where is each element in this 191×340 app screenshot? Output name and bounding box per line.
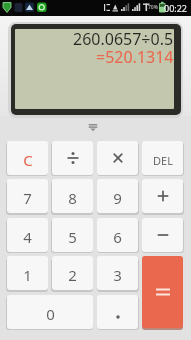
staticText: 1 [23,265,32,285]
staticText: 2 [68,265,77,285]
button[interactable]: 0 [7,295,93,329]
staticText: 8 [68,188,77,208]
staticText: 7 [23,188,32,208]
button[interactable]: 5 [52,218,93,252]
button[interactable]: 4 [7,218,48,252]
button[interactable] [97,141,138,175]
staticText: 260.0657÷0.5 [73,29,174,50]
button[interactable]: DEL [142,141,183,175]
button[interactable] [142,179,183,213]
button[interactable]: Equals [142,256,183,328]
staticText: 00:22 [164,2,188,14]
staticText: 9 [113,188,122,208]
button[interactable]: 9 [97,179,138,213]
staticText: 70% [148,4,158,11]
button[interactable]: Show history [77,117,114,137]
staticText: DEL [153,153,173,168]
staticText: C [23,150,33,170]
button[interactable]: 1 [7,256,48,290]
staticText: 0 [46,304,55,324]
button[interactable]: 8 [52,179,93,213]
button[interactable]: 6 [97,218,138,252]
button[interactable]: 2 [52,256,93,290]
button[interactable] [97,295,138,329]
button[interactable]: C [7,141,48,175]
staticText: 6 [113,227,122,247]
button[interactable]: 3 [97,256,138,290]
staticText: 3 [113,265,122,285]
button[interactable]: 7 [7,179,48,213]
staticText: =520.1314 [96,46,174,68]
button[interactable] [142,218,183,252]
staticText: 4 [23,227,32,247]
staticText: 5 [68,227,77,247]
button[interactable] [52,141,93,175]
